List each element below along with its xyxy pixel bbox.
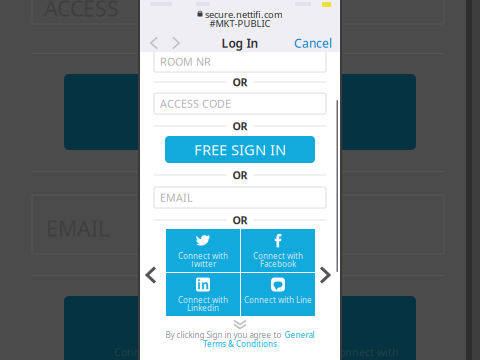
staticText: OR	[232, 119, 247, 133]
staticText: General	[284, 330, 314, 340]
button[interactable]: Scroll down	[231, 319, 249, 330]
button[interactable]: Cancel	[292, 35, 332, 51]
staticText: Linkedin	[187, 303, 219, 313]
staticText: Twitter	[190, 259, 216, 269]
staticText: in	[197, 276, 209, 292]
staticText: OR	[232, 213, 247, 227]
staticText: EMAIL	[46, 214, 109, 242]
staticText: By clicking Sign in you agree to	[165, 330, 281, 340]
staticText: Connect with	[332, 345, 399, 359]
button[interactable]: Connect with	[241, 229, 315, 272]
staticText: FREE SIGN IN	[194, 140, 286, 159]
button[interactable]: Terms & Conditions	[203, 340, 277, 348]
staticText: Facebook	[260, 259, 296, 269]
button[interactable]: Next	[315, 264, 335, 286]
staticText: Terms & Conditions	[203, 339, 277, 349]
staticText: Cancel	[294, 35, 332, 51]
staticText: ACCESS	[44, 0, 119, 22]
staticText: OR	[232, 168, 247, 182]
button[interactable]: Connect with	[166, 229, 240, 272]
staticText: Log In	[221, 35, 258, 51]
staticText: Connect with	[253, 251, 303, 261]
staticText: EMAIL	[160, 190, 193, 205]
staticText: Connect with	[178, 251, 228, 261]
staticText: Connect with Line	[244, 295, 312, 305]
staticText: Connect with	[114, 345, 181, 359]
button[interactable]: Back	[144, 35, 164, 51]
staticText: Connect with	[178, 295, 228, 305]
button[interactable]: in	[166, 273, 240, 316]
staticText: secure.nettifi.com	[205, 8, 283, 21]
button[interactable]: General	[284, 330, 314, 340]
button[interactable]: Forward	[166, 35, 186, 51]
staticText: #MKT-PUBLIC	[209, 17, 270, 30]
staticText: ROOM NR	[160, 54, 211, 69]
staticText: ACCESS CODE	[160, 96, 231, 111]
button[interactable]: Connect with Line	[241, 273, 315, 316]
button[interactable]: Previous	[141, 264, 161, 286]
staticText: OR	[232, 75, 247, 89]
button[interactable]: FREE SIGN IN	[165, 136, 315, 163]
